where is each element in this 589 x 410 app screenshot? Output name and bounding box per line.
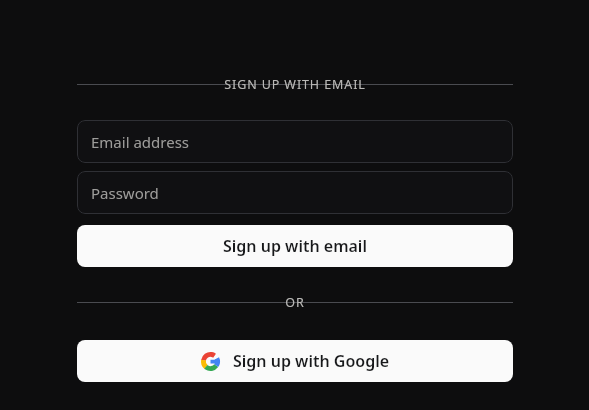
staticText: SIGN UP WITH EMAIL <box>224 76 366 93</box>
staticText: Email address <box>91 132 190 152</box>
button[interactable]: Google <box>77 340 513 382</box>
staticText: OR <box>285 294 305 311</box>
button[interactable]: Password <box>77 171 513 214</box>
other: Google <box>201 352 220 371</box>
button[interactable]: Email address <box>77 120 513 163</box>
staticText: Password <box>91 183 159 203</box>
button[interactable]: Sign up with email <box>77 225 513 267</box>
staticText: Sign up with Google <box>233 350 390 372</box>
staticText: Sign up with email <box>223 235 367 257</box>
